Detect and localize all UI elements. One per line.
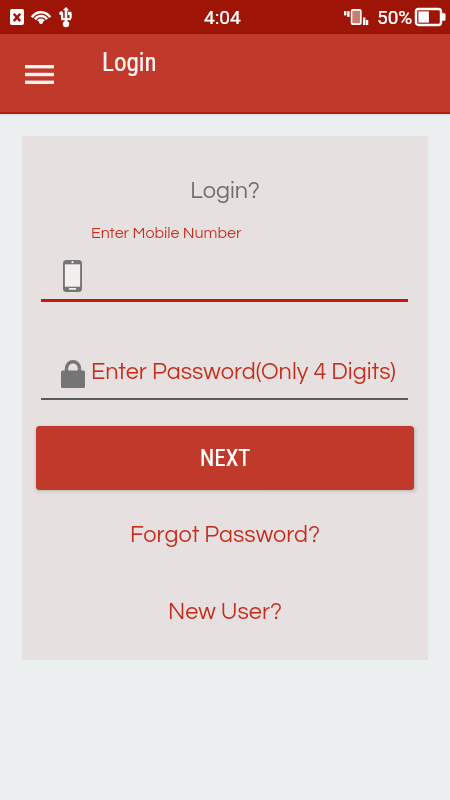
- button[interactable]: New User?: [22, 592, 428, 632]
- staticText: Enter Mobile Number: [91, 225, 242, 241]
- staticText: 4:04: [204, 6, 241, 28]
- staticText: Forgot Password?: [130, 523, 321, 547]
- button[interactable]: Mobile number input field: [41, 254, 408, 302]
- staticText: Login?: [22, 179, 428, 203]
- button[interactable]: Open navigation menu: [15, 55, 64, 93]
- staticText: New User?: [168, 600, 283, 624]
- staticText: NEXT: [200, 445, 251, 472]
- button[interactable]: NEXT: [36, 426, 414, 490]
- button[interactable]: Forgot Password?: [22, 515, 428, 555]
- button[interactable]: Password input field: [41, 354, 408, 398]
- staticText: Enter Password(Only 4 Digits): [91, 360, 396, 384]
- staticText: 50%: [377, 6, 413, 28]
- staticText: Login: [102, 48, 157, 77]
